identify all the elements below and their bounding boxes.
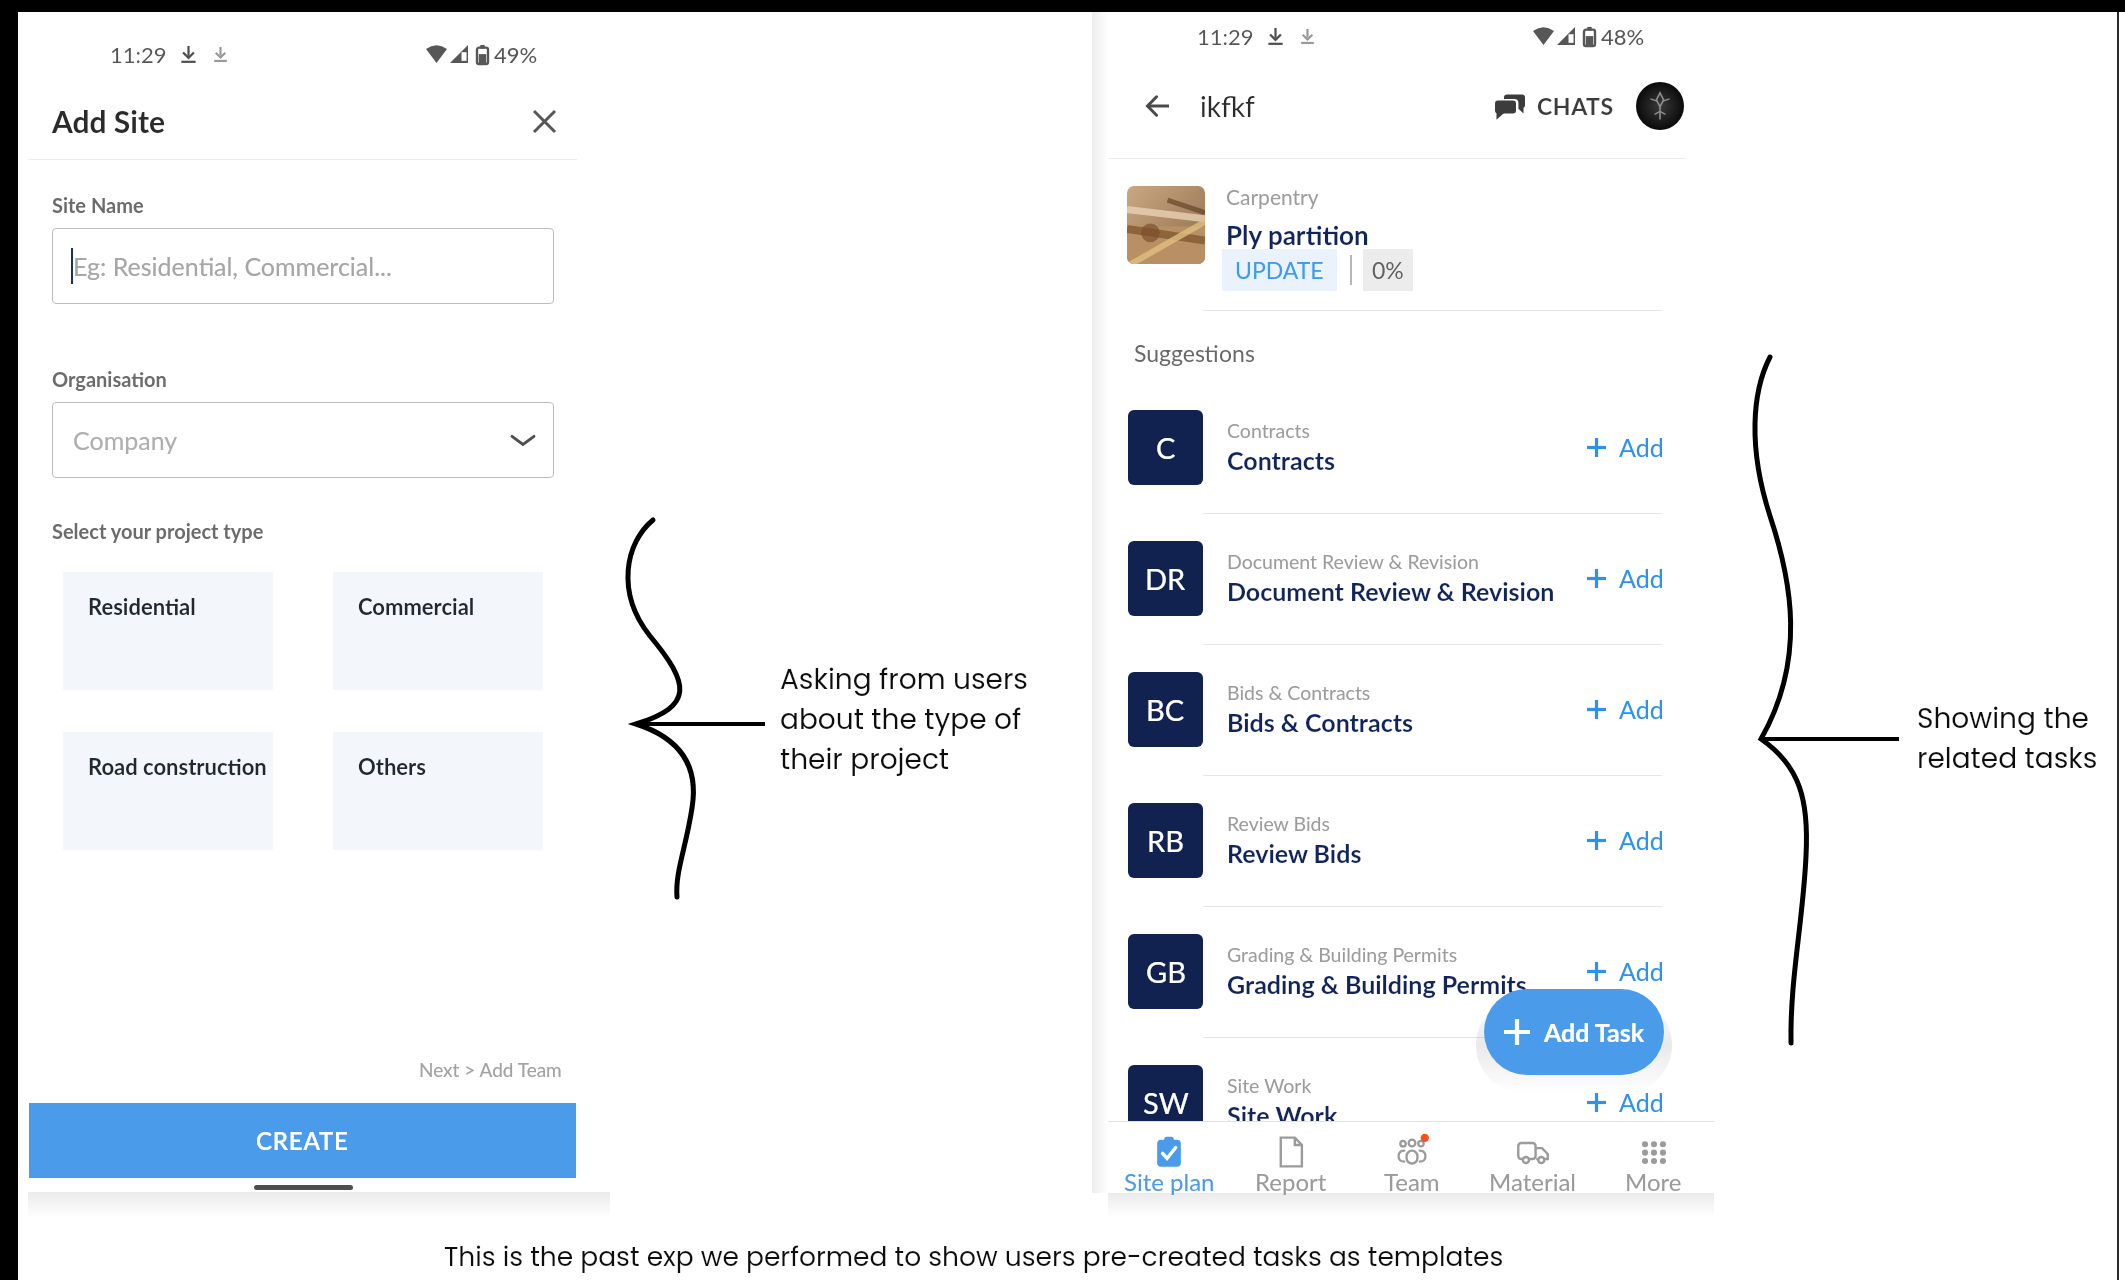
button[interactable]: Site plan — [1108, 1122, 1230, 1193]
staticText: Asking from users about the type of thei… — [780, 660, 1028, 779]
button[interactable]: GB — [1108, 906, 1714, 1036]
staticText: Grading & Building Permits — [1227, 943, 1458, 966]
staticText: Grading & Building Permits — [1227, 969, 1527, 999]
staticText: Team — [1384, 1167, 1440, 1196]
button[interactable]: Add — [1583, 950, 1668, 992]
staticText: 48% — [1601, 23, 1645, 49]
staticText: Report — [1255, 1167, 1327, 1196]
staticText: Review Bids — [1227, 812, 1330, 835]
staticText: More — [1625, 1167, 1682, 1196]
button[interactable]: Material — [1472, 1122, 1593, 1193]
staticText: Others — [358, 753, 426, 779]
button[interactable]: Close — [519, 96, 569, 146]
button[interactable]: Next > Add Team — [419, 1058, 562, 1081]
button[interactable]: Others — [333, 732, 543, 850]
button[interactable]: RB — [1108, 775, 1714, 905]
staticText: UPDATE — [1235, 256, 1324, 284]
button[interactable]: Commercial — [333, 572, 543, 690]
staticText: 11:29 — [110, 41, 167, 67]
button[interactable]: BC — [1108, 644, 1714, 774]
button[interactable]: Add — [1583, 426, 1668, 468]
staticText: RB — [1147, 823, 1184, 858]
staticText: ikfkf — [1200, 89, 1255, 123]
button[interactable]: Back — [1134, 83, 1180, 129]
staticText: Add Site — [52, 103, 165, 139]
button[interactable]: Profile — [1636, 82, 1684, 130]
staticText: GB — [1146, 954, 1186, 989]
staticText: CREATE — [256, 1126, 349, 1155]
staticText: Add — [1619, 694, 1664, 724]
button[interactable]: Add — [1583, 557, 1668, 599]
button[interactable]: DR — [1108, 513, 1714, 643]
staticText: Residential — [88, 593, 196, 619]
button[interactable]: C — [1108, 382, 1714, 512]
staticText: Organisation — [52, 367, 167, 391]
staticText: Site Work — [1227, 1074, 1312, 1097]
staticText: 11:29 — [1197, 23, 1254, 49]
staticText: Add — [1619, 563, 1664, 593]
staticText: CHATS — [1537, 92, 1614, 120]
staticText: Bids & Contracts — [1227, 681, 1371, 704]
staticText: Carpentry — [1226, 184, 1319, 209]
button[interactable]: Add — [1583, 819, 1668, 861]
staticText: Contracts — [1227, 419, 1311, 442]
button[interactable]: CHATS — [1490, 86, 1619, 126]
button[interactable]: Company — [52, 402, 554, 478]
button[interactable]: Team — [1351, 1122, 1472, 1193]
staticText: SW — [1143, 1085, 1189, 1120]
button[interactable]: Add Task — [1484, 989, 1664, 1075]
staticText: Add — [1619, 825, 1664, 855]
staticText: Suggestions — [1134, 339, 1255, 367]
staticText: DR — [1145, 561, 1186, 596]
button[interactable]: Add — [1583, 1081, 1668, 1123]
staticText: Site Work — [1227, 1100, 1338, 1130]
button[interactable]: Eg: Residential, Commercial... — [52, 228, 554, 304]
staticText: Material — [1489, 1167, 1577, 1196]
button[interactable]: CREATE — [29, 1103, 576, 1178]
staticText: Document Review & Revision — [1227, 550, 1479, 573]
staticText: 0% — [1372, 256, 1404, 284]
staticText: BC — [1146, 692, 1185, 727]
button[interactable]: UPDATE — [1222, 249, 1337, 291]
staticText: Ply partition — [1226, 219, 1369, 250]
staticText: Document Review & Revision — [1227, 576, 1555, 606]
staticText: Bids & Contracts — [1227, 707, 1414, 737]
staticText: Site plan — [1124, 1167, 1215, 1196]
staticText: 49% — [494, 41, 538, 67]
staticText: Select your project type — [52, 519, 264, 543]
button[interactable]: Report — [1230, 1122, 1351, 1193]
button[interactable]: More — [1593, 1122, 1714, 1193]
staticText: This is the past exp we performed to sho… — [444, 1238, 1504, 1275]
button[interactable]: Add — [1583, 688, 1668, 730]
staticText: Add — [1619, 432, 1664, 462]
staticText: Add — [1619, 1087, 1664, 1117]
staticText: Contracts — [1227, 445, 1336, 475]
staticText: Showing the related tasks — [1917, 699, 2098, 778]
staticText: Eg: Residential, Commercial... — [73, 251, 392, 281]
button[interactable]: Road construction — [63, 732, 273, 850]
button[interactable]: Residential — [63, 572, 273, 690]
staticText: Commercial — [358, 593, 475, 619]
staticText: Review Bids — [1227, 838, 1362, 868]
staticText: Site Name — [52, 193, 144, 217]
staticText: C — [1156, 430, 1176, 465]
staticText: Company — [73, 425, 178, 455]
staticText: Add — [1619, 956, 1664, 986]
staticText: Road construction — [88, 753, 267, 779]
button[interactable]: SW — [1108, 1037, 1714, 1167]
staticText: Add Task — [1544, 1017, 1645, 1047]
